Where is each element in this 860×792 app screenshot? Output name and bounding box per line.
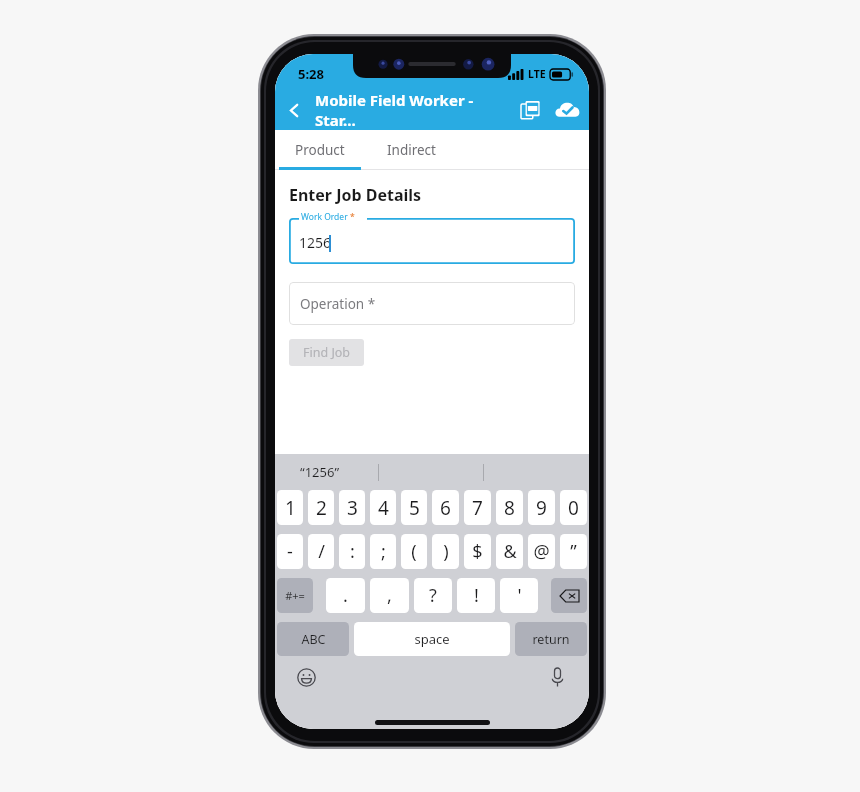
button[interactable]: 6 xyxy=(432,490,459,525)
button[interactable]: return xyxy=(515,622,587,656)
staticText: , xyxy=(387,583,392,608)
button[interactable]: @ xyxy=(528,534,555,569)
staticText: ) xyxy=(443,539,449,564)
button[interactable]: $ xyxy=(464,534,491,569)
staticText: ? xyxy=(429,583,437,608)
button[interactable]: ! xyxy=(457,578,495,613)
button[interactable]: 3 xyxy=(339,490,365,525)
staticText: 0 xyxy=(568,495,579,521)
staticText: ( xyxy=(411,539,417,564)
button[interactable]: - xyxy=(277,534,303,569)
staticText: @ xyxy=(533,539,550,564)
button[interactable]: Emoji keyboard xyxy=(294,665,318,689)
button[interactable]: & xyxy=(496,534,523,569)
staticText: Indirect xyxy=(387,141,436,159)
button[interactable]: ABC xyxy=(277,622,349,656)
staticText: 2 xyxy=(316,495,327,521)
staticText: Work Order xyxy=(301,211,350,223)
staticText: 4 xyxy=(378,495,389,521)
staticText: 9 xyxy=(536,495,547,521)
button[interactable]: ( xyxy=(401,534,427,569)
button[interactable]: 4 xyxy=(370,490,396,525)
staticText: & xyxy=(503,539,517,564)
staticText: / xyxy=(318,539,325,564)
staticText: 7 xyxy=(472,495,483,521)
staticText: 3 xyxy=(347,495,358,521)
staticText: Enter Job Details xyxy=(289,184,422,206)
button[interactable]: ) xyxy=(432,534,459,569)
button[interactable]: Sync to cloud xyxy=(549,92,585,128)
button[interactable]: Indirect xyxy=(365,130,457,170)
staticText: 1256 xyxy=(299,233,332,252)
staticText: 5 xyxy=(409,495,420,521)
staticText: : xyxy=(350,539,355,564)
button[interactable]: Dictation xyxy=(545,665,569,689)
staticText: Find Job xyxy=(303,344,351,361)
button[interactable]: . xyxy=(326,578,365,613)
staticText: “1256” xyxy=(300,463,340,481)
button[interactable]: Product xyxy=(275,130,365,170)
button[interactable]: 5 xyxy=(401,490,427,525)
staticText: 1 xyxy=(285,495,296,521)
button[interactable]: / xyxy=(308,534,334,569)
staticText: Mobile Field Worker - Star... xyxy=(315,90,513,130)
staticText: LTE xyxy=(528,67,546,81)
staticText: ” xyxy=(570,539,577,564)
staticText: ABC xyxy=(301,631,326,648)
staticText: 6 xyxy=(440,495,451,521)
staticText: 8 xyxy=(504,495,515,521)
button[interactable]: Back xyxy=(275,91,313,129)
button[interactable]: : xyxy=(339,534,365,569)
button[interactable]: 2 xyxy=(308,490,334,525)
button[interactable]: 1256 xyxy=(289,218,575,264)
button[interactable]: ” xyxy=(560,534,587,569)
button[interactable]: Find Job xyxy=(289,339,364,366)
staticText: 5:28 xyxy=(298,65,324,83)
button[interactable]: ? xyxy=(414,578,452,613)
staticText: * xyxy=(350,211,355,223)
staticText: ' xyxy=(517,583,522,608)
staticText: . xyxy=(343,583,348,608)
button[interactable]: 9 xyxy=(528,490,555,525)
button[interactable]: , xyxy=(370,578,409,613)
staticText: Product xyxy=(295,141,345,159)
staticText: - xyxy=(287,539,293,564)
staticText: ! xyxy=(474,583,479,608)
button[interactable]: 0 xyxy=(560,490,587,525)
staticText: $ xyxy=(472,539,483,564)
button[interactable]: 1 xyxy=(277,490,303,525)
button[interactable]: Operation * xyxy=(289,282,575,325)
button[interactable]: Export PDF xyxy=(513,93,547,127)
button[interactable]: Backspace xyxy=(551,578,587,613)
staticText: ; xyxy=(381,539,386,564)
button[interactable]: #+= xyxy=(277,578,313,613)
staticText: space xyxy=(414,630,450,648)
button[interactable]: ; xyxy=(370,534,396,569)
staticText: Operation * xyxy=(300,295,376,313)
button[interactable]: ' xyxy=(500,578,538,613)
button[interactable]: 8 xyxy=(496,490,523,525)
staticText: return xyxy=(532,631,570,648)
staticText: #+= xyxy=(285,588,305,603)
button[interactable]: 7 xyxy=(464,490,491,525)
button[interactable]: space xyxy=(354,622,510,656)
